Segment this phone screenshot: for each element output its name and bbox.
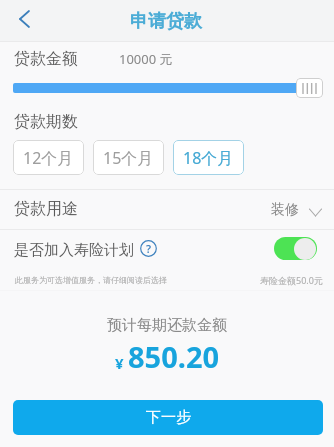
button[interactable]: Help about life insurance <box>140 240 157 257</box>
button[interactable]: 18个月 <box>173 140 244 175</box>
staticText: 贷款用途 <box>14 199 78 219</box>
button[interactable]: 下一步 <box>13 400 323 435</box>
staticText: 装修 <box>271 201 299 219</box>
button[interactable]: Loan amount slider <box>296 78 323 98</box>
staticText: 此服务为可选增值服务，请仔细阅读后选择 <box>15 275 167 285</box>
staticText: 贷款期数 <box>14 112 78 132</box>
staticText: 12个月 <box>23 147 74 169</box>
button[interactable]: 12个月 <box>13 140 84 175</box>
staticText: ¥ <box>115 353 124 373</box>
staticText: 是否加入寿险计划 <box>14 241 134 260</box>
button[interactable]: 15个月 <box>93 140 164 175</box>
staticText: 10000 元 <box>119 50 173 68</box>
button[interactable]: 贷款用途 <box>0 190 334 230</box>
staticText: ? <box>146 241 152 256</box>
staticText: 申请贷款 <box>130 10 202 33</box>
staticText: 下一步 <box>146 408 191 427</box>
staticText: 15个月 <box>103 147 154 169</box>
button[interactable]: Back <box>0 0 48 41</box>
staticText: 850.20 <box>128 337 220 376</box>
staticText: 预计每期还款金额 <box>107 316 227 335</box>
staticText: 18个月 <box>183 147 234 169</box>
button[interactable]: Join life insurance plan toggle <box>274 237 317 260</box>
staticText: 寿险金额50.0元 <box>260 274 323 286</box>
staticText: 贷款金额 <box>14 49 78 69</box>
